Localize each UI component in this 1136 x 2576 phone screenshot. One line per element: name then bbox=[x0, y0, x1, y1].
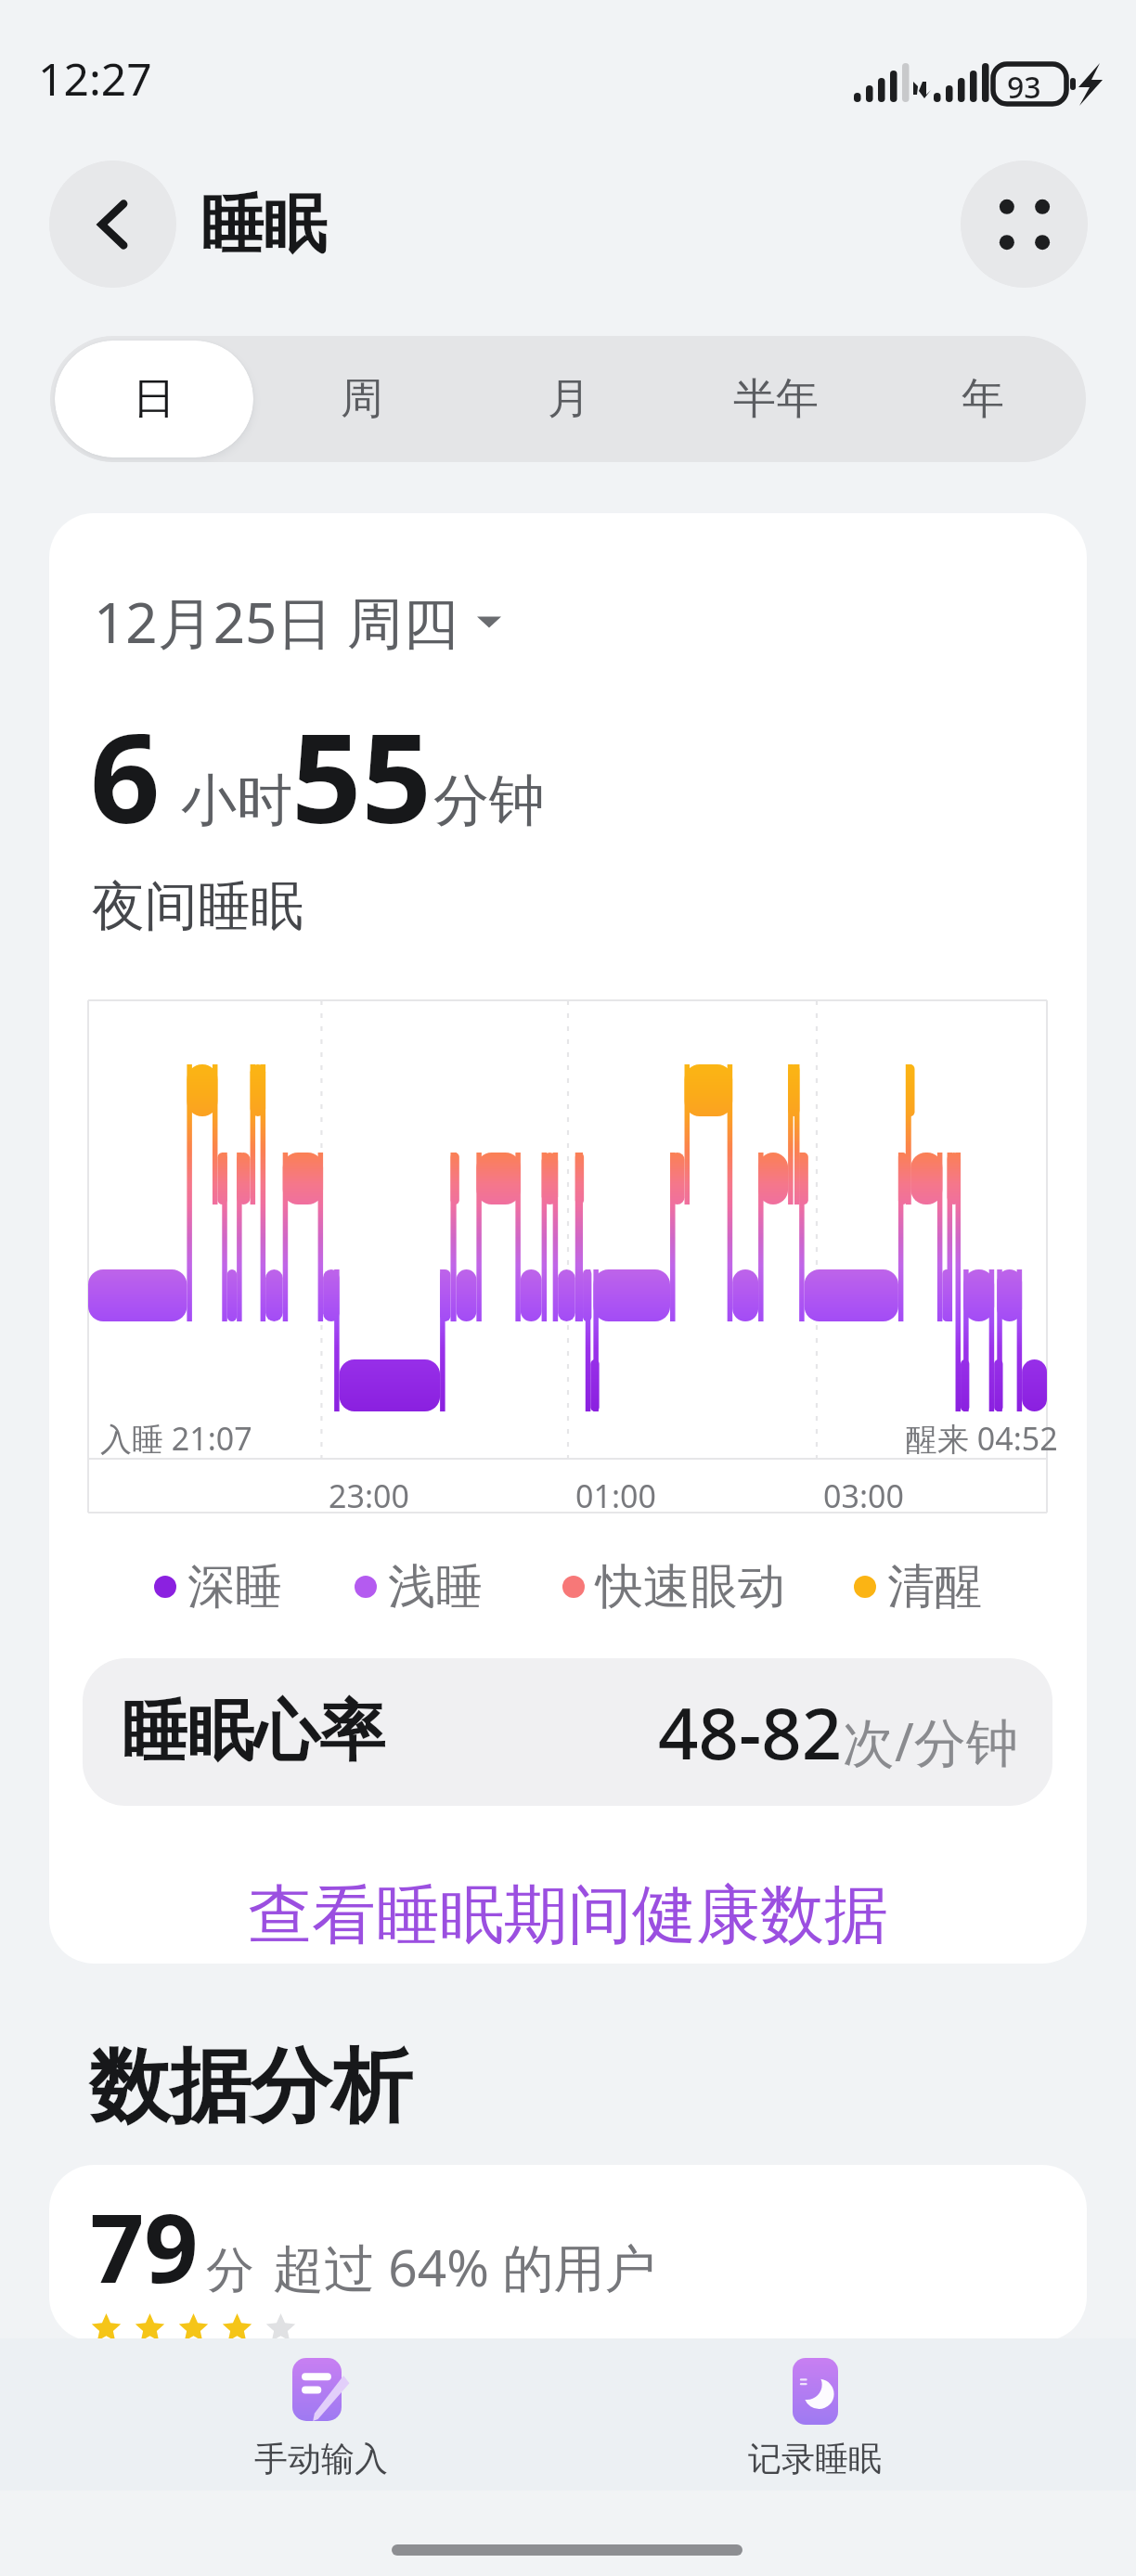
staticText: 48-82 bbox=[658, 1684, 843, 1781]
staticText: 周 bbox=[341, 372, 383, 426]
staticText: 分钟 bbox=[433, 766, 545, 836]
staticText: 12:27 bbox=[38, 48, 152, 109]
staticText: 睡眠心率 bbox=[122, 1691, 385, 1773]
button[interactable]: 手动输入 bbox=[219, 2358, 423, 2479]
staticText: 睡眠 bbox=[200, 186, 327, 265]
button[interactable]: 月 bbox=[470, 341, 667, 457]
staticText: 查看睡眠期间健康数据 bbox=[248, 1875, 888, 1956]
staticText: 数据分析 bbox=[89, 2036, 412, 2138]
staticText: 日 bbox=[133, 372, 175, 426]
staticText: 半年 bbox=[733, 372, 819, 426]
button[interactable]: 12月25日 周四 bbox=[94, 584, 501, 660]
staticText: 手动输入 bbox=[254, 2438, 388, 2479]
staticText: 79 bbox=[90, 2182, 199, 2311]
staticText: 记录睡眠 bbox=[748, 2438, 882, 2479]
staticText: 快速眼动 bbox=[596, 1557, 785, 1616]
button[interactable]: 日 bbox=[55, 341, 253, 457]
button[interactable]: 记录睡眠 bbox=[713, 2358, 917, 2479]
staticText: 入睡 21:07 bbox=[100, 1417, 252, 1460]
staticText: 夜间睡眠 bbox=[92, 873, 303, 940]
staticText: 次/分钟 bbox=[843, 1706, 1018, 1776]
staticText: 浅睡 bbox=[388, 1557, 483, 1616]
button[interactable]: 半年 bbox=[677, 341, 874, 457]
staticText: 清醒 bbox=[887, 1557, 982, 1616]
staticText: 深睡 bbox=[187, 1557, 282, 1616]
staticText: 醒来 04:52 bbox=[906, 1417, 1058, 1460]
staticText: 小时 bbox=[181, 766, 292, 836]
staticText: 12月25日 周四 bbox=[94, 584, 458, 660]
staticText: 年 bbox=[962, 372, 1004, 426]
button[interactable]: 睡眠心率 bbox=[83, 1658, 1052, 1806]
staticText: 分 bbox=[206, 2240, 254, 2301]
staticText: 03:00 bbox=[823, 1475, 904, 1517]
staticText: 超过 64% 的用户 bbox=[273, 2232, 656, 2301]
staticText: 01:00 bbox=[575, 1475, 656, 1517]
button[interactable]: 年 bbox=[884, 341, 1081, 457]
button[interactable]: 周 bbox=[263, 341, 460, 457]
button[interactable]: 返回 bbox=[49, 161, 176, 288]
staticText: 55 bbox=[291, 692, 432, 859]
staticText: 23:00 bbox=[329, 1475, 409, 1517]
staticText: 93 bbox=[1007, 67, 1041, 108]
button[interactable]: 更多选项 bbox=[961, 161, 1088, 288]
button[interactable]: 查看睡眠期间健康数据 bbox=[49, 1864, 1087, 1964]
staticText: 月 bbox=[548, 372, 590, 426]
staticText: 6 bbox=[90, 692, 161, 859]
